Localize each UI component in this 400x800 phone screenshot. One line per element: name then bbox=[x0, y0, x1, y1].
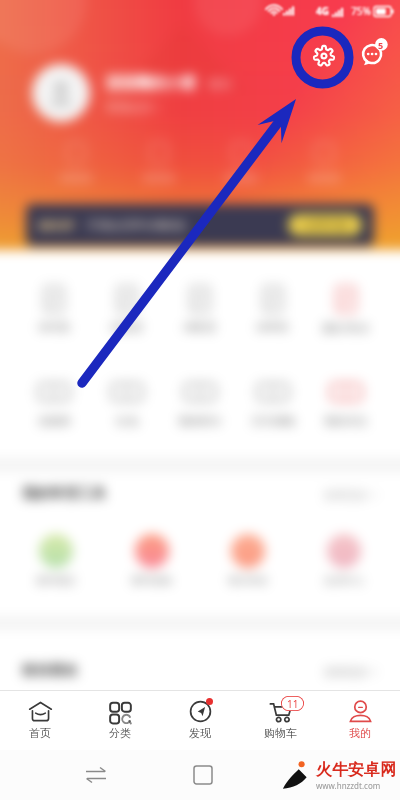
staticText: 购物车 bbox=[264, 726, 297, 740]
staticText: 天天领钱 bbox=[251, 414, 295, 428]
button[interactable]: 每日特价 bbox=[200, 534, 296, 587]
button[interactable]: 11 bbox=[240, 690, 320, 750]
button[interactable]: 优惠券 bbox=[18, 381, 90, 428]
staticText: 我的常用工具 bbox=[22, 485, 106, 503]
staticText: 待评价 bbox=[256, 320, 289, 334]
button[interactable]: 发现 bbox=[160, 690, 240, 750]
staticText: 11 bbox=[287, 697, 299, 711]
button[interactable]: 限时抢购 bbox=[104, 534, 200, 587]
button[interactable]: 首页 bbox=[0, 690, 80, 750]
staticText: 签到领豆 bbox=[36, 574, 76, 587]
staticText: 发现 bbox=[189, 726, 211, 740]
staticText: 火牛安卓网 bbox=[316, 760, 396, 780]
button[interactable]: 分类 bbox=[80, 690, 160, 750]
staticText: 首页 bbox=[29, 726, 51, 740]
staticText: 猜你喜欢 bbox=[22, 662, 78, 680]
staticText: 立即开通 bbox=[303, 218, 347, 232]
button[interactable]: Messages bbox=[361, 36, 391, 66]
button[interactable]: 退款/售后 bbox=[309, 285, 382, 335]
staticText: 待发货 bbox=[110, 320, 143, 334]
staticText: 限时抢购 bbox=[132, 574, 172, 587]
staticText: 红包 bbox=[116, 414, 138, 428]
staticText: 88VIP bbox=[38, 216, 75, 234]
staticText: 查看更多 > bbox=[324, 487, 378, 502]
staticText: 每日特价 bbox=[228, 574, 268, 587]
staticText: 我的积分 bbox=[178, 414, 222, 428]
button[interactable]: 待付款 bbox=[18, 285, 90, 334]
button[interactable]: 待发货 bbox=[90, 285, 163, 334]
staticText: 查看更多 > bbox=[324, 664, 378, 679]
staticText: 待收货 bbox=[183, 320, 216, 334]
staticText: www.hnzzdt.com bbox=[316, 780, 381, 791]
button[interactable]: 待收货 bbox=[163, 285, 236, 334]
staticText: 普通会员 > bbox=[106, 99, 160, 114]
staticText: 75% bbox=[351, 4, 371, 18]
button[interactable]: 会员中心 bbox=[296, 534, 392, 587]
button[interactable]: 红包 bbox=[90, 381, 163, 428]
staticText: 我的关注 bbox=[324, 414, 368, 428]
button[interactable]: 我的 bbox=[320, 690, 400, 750]
button[interactable]: 签到领豆 bbox=[8, 534, 104, 587]
button[interactable]: 天天领钱 bbox=[236, 381, 309, 428]
staticText: 签到 bbox=[208, 76, 232, 91]
staticText: 5 bbox=[378, 39, 384, 51]
staticText: 4G bbox=[316, 4, 329, 18]
staticText: 开通会员享专属权益 bbox=[87, 218, 186, 232]
staticText: 甜甜圈的小窝 bbox=[106, 74, 196, 93]
staticText: 我的 bbox=[349, 726, 371, 740]
staticText: 待付款 bbox=[38, 320, 71, 334]
button[interactable]: 待评价 bbox=[236, 285, 309, 334]
staticText: 分类 bbox=[109, 726, 131, 740]
button[interactable]: 我的积分 bbox=[163, 381, 236, 428]
button[interactable]: 我的关注 bbox=[309, 381, 382, 428]
staticText: 退款/售后 bbox=[321, 320, 370, 335]
staticText: 会员中心 bbox=[324, 574, 364, 587]
staticText: 优惠券 bbox=[38, 414, 71, 428]
button[interactable]: Settings bbox=[311, 43, 337, 69]
